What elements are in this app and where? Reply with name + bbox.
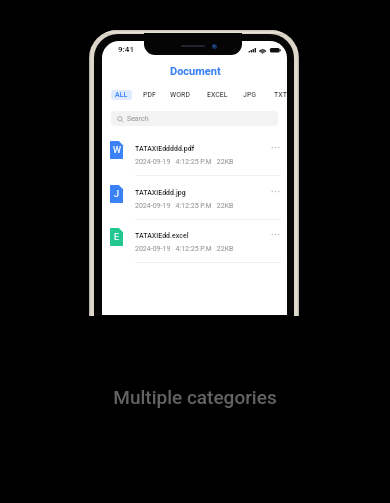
- staticText: J: [114, 189, 119, 200]
- button[interactable]: [111, 90, 132, 100]
- staticText: TATAXIEddddd.pdf: [135, 145, 195, 153]
- button[interactable]: EXCEL: [204, 90, 231, 100]
- button[interactable]: WORD: [167, 90, 193, 100]
- staticText: TXT: [274, 91, 287, 99]
- staticText: WORD: [170, 91, 190, 99]
- staticText: 2024-09-19 4:12:25 P.M 22KB: [135, 158, 234, 166]
- staticText: PDF: [143, 91, 156, 99]
- staticText: 2024-09-19 4:12:25 P.M 22KB: [135, 202, 234, 210]
- button[interactable]: More options: [267, 139, 284, 156]
- staticText: 2024-09-19 4:12:25 P.M 22KB: [135, 245, 234, 253]
- staticText: JPG: [243, 91, 257, 99]
- staticText: E: [114, 232, 120, 243]
- button[interactable]: E: [102, 221, 287, 265]
- staticText: 9:41: [118, 45, 135, 54]
- button[interactable]: J: [102, 178, 287, 222]
- button[interactable]: TXT: [271, 90, 287, 100]
- staticText: Document: [170, 65, 221, 78]
- button[interactable]: JPG: [240, 90, 260, 100]
- staticText: ALL: [115, 91, 128, 99]
- staticText: TATAXIEdd.excel: [135, 232, 189, 240]
- button[interactable]: More options: [267, 226, 284, 243]
- staticText: TATAXIEddd.jpg: [135, 189, 186, 197]
- button[interactable]: W: [102, 134, 287, 178]
- staticText: EXCEL: [207, 91, 228, 99]
- button[interactable]: Search: [111, 111, 278, 126]
- staticText: W: [113, 145, 121, 156]
- staticText: Multiple categories: [0, 386, 390, 408]
- button[interactable]: More options: [267, 183, 284, 200]
- button[interactable]: ALL: [112, 90, 131, 100]
- staticText: Search: [127, 115, 149, 123]
- button[interactable]: PDF: [140, 90, 159, 100]
